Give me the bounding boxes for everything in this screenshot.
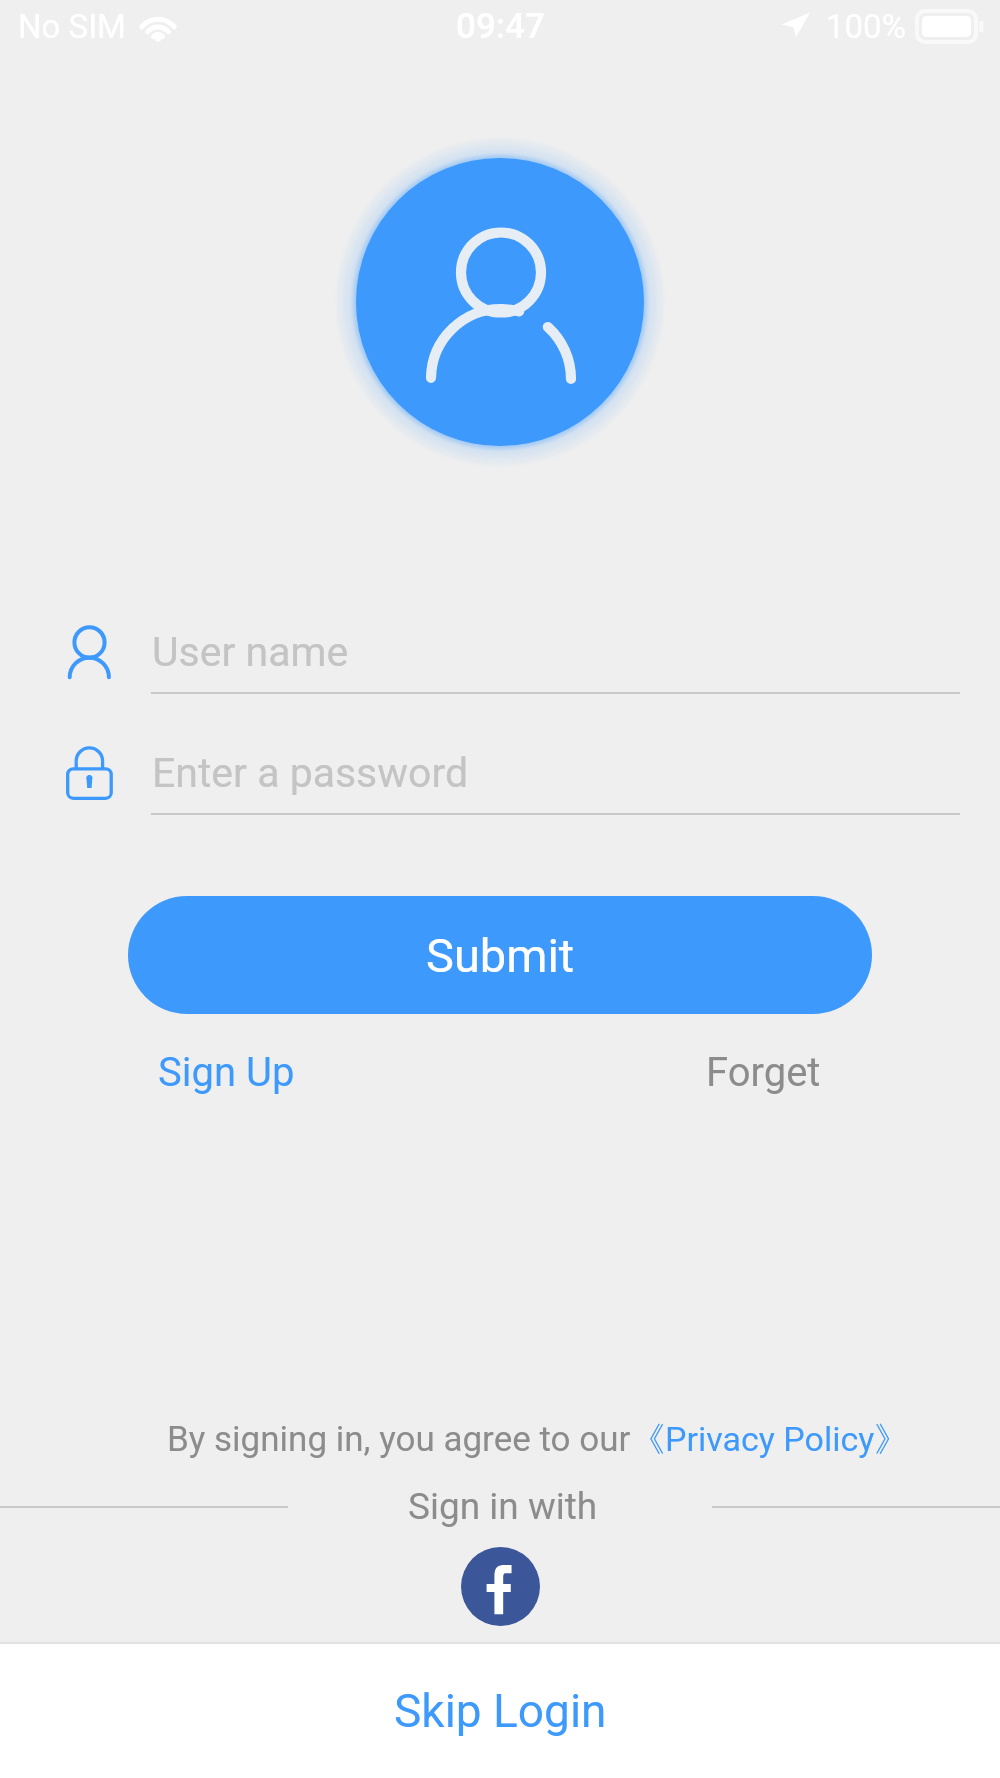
staticText: Enter a password	[152, 749, 469, 797]
staticText: Forget	[706, 1049, 821, 1096]
button[interactable]: Sign Up	[149, 1040, 304, 1104]
staticText: Sign Up	[158, 1049, 295, 1096]
staticText: By signing in, you agree to our	[167, 1419, 631, 1460]
button[interactable]: Submit	[128, 896, 872, 1014]
staticText: Skip Login	[394, 1684, 607, 1738]
button[interactable]: 《Privacy Policy》	[631, 1418, 909, 1461]
button[interactable]: Enter a password	[0, 725, 1000, 817]
staticText: 《Privacy Policy》	[631, 1418, 909, 1461]
staticText: 100%	[826, 7, 906, 46]
staticText: User name	[152, 628, 349, 676]
button[interactable]: Skip Login	[0, 1644, 1000, 1778]
button[interactable]: Sign in with Facebook	[461, 1547, 540, 1626]
staticText: 09:47	[456, 6, 545, 47]
staticText: Sign in with	[408, 1485, 598, 1528]
staticText: No SIM	[18, 7, 126, 46]
button[interactable]: User name	[0, 604, 1000, 696]
staticText: Submit	[426, 928, 575, 983]
button[interactable]: Forget	[697, 1040, 830, 1104]
